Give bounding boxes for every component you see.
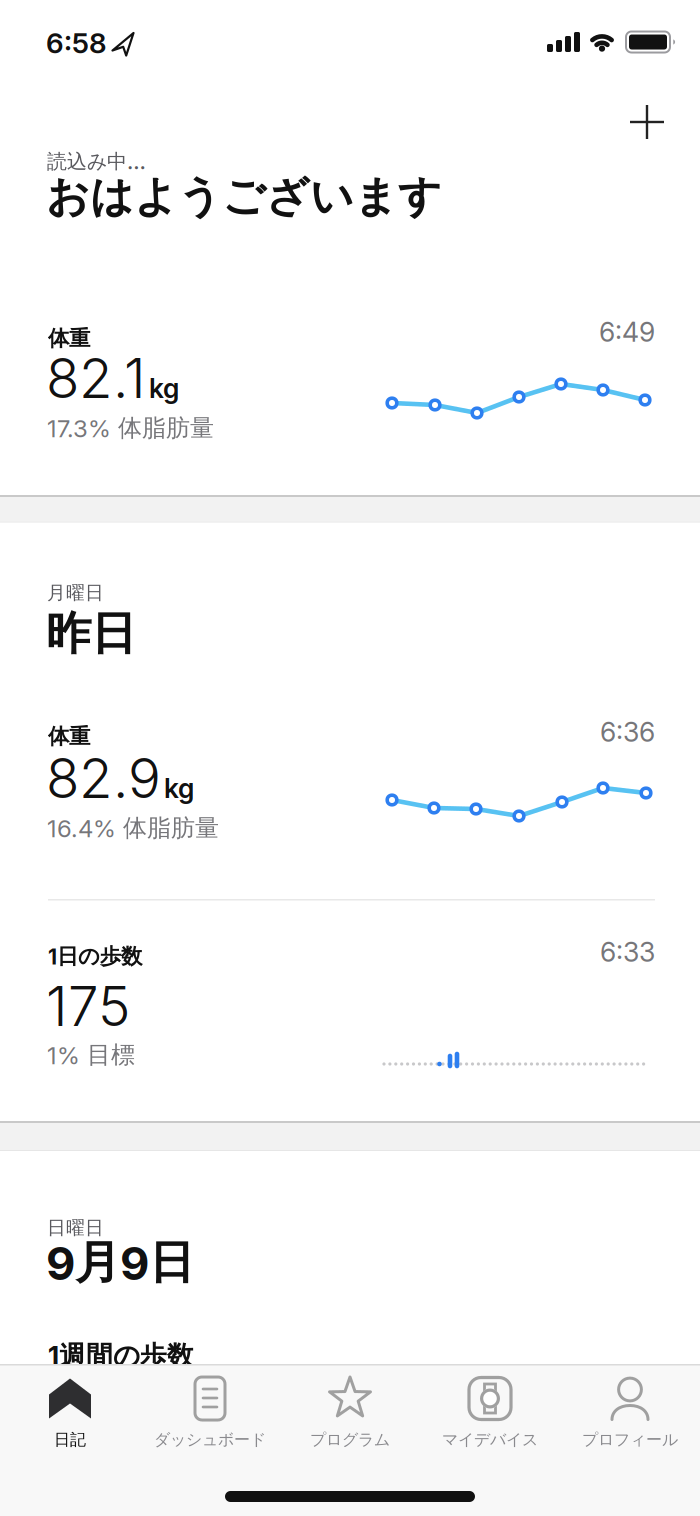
staticText: 体重 bbox=[48, 325, 90, 352]
staticText: 6:36 bbox=[600, 716, 655, 748]
staticText: kg bbox=[164, 772, 194, 804]
staticText: 82.9 bbox=[46, 745, 161, 811]
staticText: 175 bbox=[46, 973, 130, 1039]
button[interactable]: プロフィール bbox=[560, 1375, 700, 1459]
staticText: 1% 目標 bbox=[47, 1040, 135, 1070]
staticText: 16.4% 体脂肪量 bbox=[47, 813, 219, 843]
staticText: 日記 bbox=[54, 1429, 86, 1450]
staticText: 1週間の歩数 bbox=[48, 1339, 194, 1373]
button[interactable]: マイデバイス bbox=[420, 1375, 560, 1459]
staticText: 月曜日 bbox=[47, 581, 104, 604]
button[interactable]: 日記 bbox=[0, 1375, 140, 1459]
staticText: 6:58 bbox=[46, 26, 107, 60]
staticText: 読込み中… bbox=[47, 149, 146, 174]
staticText: プロフィール bbox=[582, 1429, 678, 1450]
staticText: 9月9日 bbox=[46, 1234, 194, 1291]
staticText: 1日の歩数 bbox=[48, 943, 142, 970]
staticText: プログラム bbox=[310, 1429, 390, 1450]
staticText: おはようございます bbox=[46, 170, 442, 224]
staticText: 17.3% 体脂肪量 bbox=[47, 413, 214, 443]
staticText: 昨日 bbox=[46, 605, 136, 662]
staticText: 6:33 bbox=[600, 936, 655, 968]
button[interactable]: ダッシュボード bbox=[140, 1375, 280, 1459]
staticText: マイデバイス bbox=[442, 1429, 538, 1450]
staticText: 6:49 bbox=[599, 316, 655, 348]
button[interactable]: Add bbox=[620, 95, 674, 149]
staticText: 日曜日 bbox=[47, 1216, 104, 1239]
staticText: kg bbox=[149, 372, 179, 404]
staticText: 体重 bbox=[48, 723, 90, 750]
button[interactable]: プログラム bbox=[280, 1375, 420, 1459]
staticText: 82.1 bbox=[46, 345, 146, 411]
staticText: ダッシュボード bbox=[154, 1429, 266, 1450]
